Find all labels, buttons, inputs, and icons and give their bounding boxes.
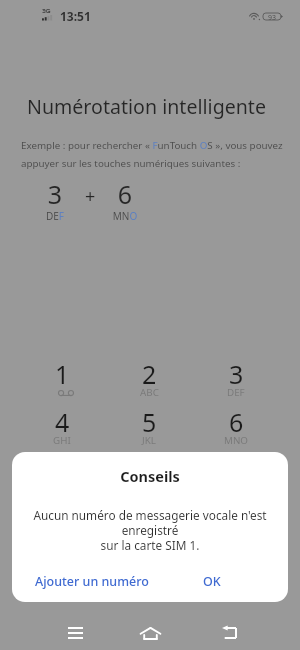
staticText: * [55, 501, 69, 535]
button[interactable]: Back [205, 609, 253, 650]
staticText: 3 [25, 177, 85, 211]
button[interactable]: 6 [202, 404, 270, 450]
staticText: DEF [227, 386, 245, 399]
staticText: 3 [229, 357, 244, 391]
staticText: Aucun numéro de messagerie vocale n'est … [26, 507, 274, 554]
staticText: 5 [142, 405, 157, 439]
button[interactable]: OK [168, 565, 256, 597]
staticText: 93 [263, 13, 281, 23]
button[interactable]: Recent apps [51, 609, 99, 650]
button[interactable]: 5 [115, 404, 183, 450]
staticText: Numérotation intelligente [27, 93, 266, 120]
staticText: ABC [140, 386, 159, 399]
button[interactable]: * [28, 500, 96, 546]
button[interactable]: 4 [28, 404, 96, 450]
staticText: 2 [142, 357, 157, 391]
staticText: Exemple : pour rechercher « FunTouch OS … [21, 139, 287, 170]
staticText: + [85, 184, 96, 209]
staticText: 13:51 [60, 8, 91, 24]
button[interactable]: Ajouter un numéro [22, 565, 162, 597]
staticText: OK [203, 573, 221, 590]
staticText: 8 [142, 453, 157, 487]
button[interactable]: Home [126, 609, 174, 650]
button[interactable]: 3 [202, 356, 270, 402]
staticText: Conseils [12, 466, 288, 486]
staticText: DEF [25, 209, 85, 223]
staticText: 4 [55, 405, 70, 439]
staticText: + [146, 530, 152, 543]
button[interactable]: 2 [115, 356, 183, 402]
staticText: 6 [229, 405, 244, 439]
staticText: Ajouter un numéro [35, 573, 149, 590]
staticText: MNO [95, 209, 155, 223]
button[interactable]: # [202, 500, 270, 546]
staticText: GHI [53, 434, 71, 447]
button[interactable]: 1 [28, 356, 96, 402]
staticText: # [228, 501, 245, 535]
staticText: JKL [142, 434, 156, 447]
staticText: 0 [142, 501, 157, 535]
staticText: MNO [224, 434, 248, 447]
button[interactable]: 0 [115, 500, 183, 546]
staticText: 1 [55, 357, 70, 391]
button[interactable]: 8 [115, 452, 183, 498]
staticText: 6 [95, 177, 155, 211]
